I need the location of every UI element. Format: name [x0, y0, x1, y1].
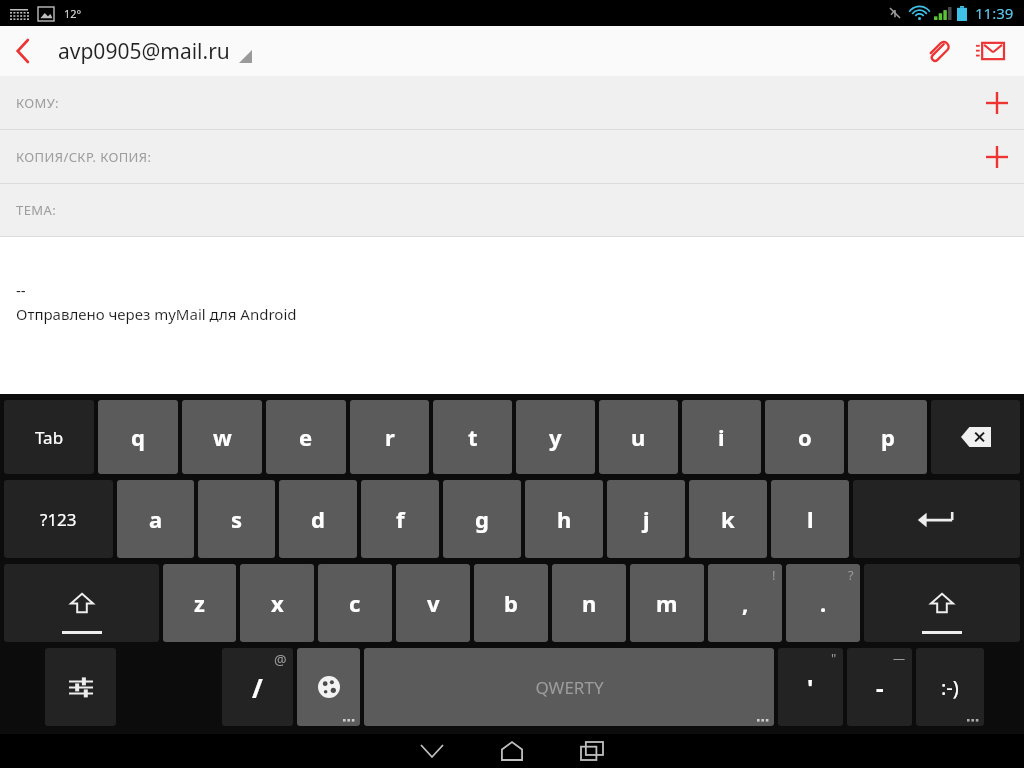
button[interactable]: Hide keyboard	[392, 734, 472, 768]
button[interactable]: r	[350, 400, 429, 474]
staticText: h	[557, 504, 572, 534]
button[interactable]: ТЕМА:	[0, 184, 1024, 236]
button[interactable]: /	[222, 648, 293, 726]
button[interactable]: f	[361, 480, 439, 558]
staticText: o	[798, 422, 812, 452]
staticText: !	[772, 566, 776, 584]
button[interactable]: --	[0, 237, 1024, 394]
button[interactable]: m	[630, 564, 704, 642]
button[interactable]: c	[318, 564, 392, 642]
button[interactable]: z	[163, 564, 236, 642]
staticText: e	[299, 422, 313, 452]
button[interactable]: .	[786, 564, 860, 642]
button[interactable]: КОМУ:	[0, 76, 1024, 129]
staticText: d	[311, 504, 325, 534]
staticText: n	[582, 588, 597, 618]
button[interactable]: j	[607, 480, 685, 558]
button[interactable]: w	[182, 400, 262, 474]
button[interactable]: g	[443, 480, 521, 558]
staticText: r	[385, 422, 395, 452]
staticText: q	[131, 422, 145, 452]
button[interactable]: n	[552, 564, 626, 642]
staticText: p	[881, 422, 895, 452]
button[interactable]: Add recipient	[970, 131, 1024, 183]
button[interactable]: avp0905@mail.ru	[58, 37, 252, 66]
button[interactable]: Change language	[297, 648, 360, 726]
button[interactable]: v	[396, 564, 470, 642]
staticText: .	[820, 588, 827, 618]
button[interactable]: -	[847, 648, 912, 726]
staticText: ?	[848, 566, 854, 584]
staticText: "	[831, 649, 837, 667]
staticText: avp0905@mail.ru	[58, 37, 230, 66]
button[interactable]: Recent apps	[552, 734, 632, 768]
staticText: —	[893, 650, 906, 666]
staticText: u	[631, 422, 646, 452]
button[interactable]: ,	[708, 564, 782, 642]
staticText: x	[271, 588, 284, 618]
button[interactable]: b	[474, 564, 548, 642]
staticText: --	[16, 280, 26, 300]
staticText: b	[504, 588, 518, 618]
button[interactable]: Send	[964, 26, 1016, 76]
button[interactable]: y	[516, 400, 595, 474]
staticText: КОМУ:	[16, 94, 59, 112]
button[interactable]: shift	[4, 564, 159, 642]
staticText: s	[231, 504, 243, 534]
button[interactable]: s	[198, 480, 275, 558]
button[interactable]: bksp	[931, 400, 1020, 474]
staticText: y	[549, 422, 562, 452]
button[interactable]: shift	[864, 564, 1020, 642]
button[interactable]: Attach	[912, 26, 964, 76]
staticText: c	[349, 588, 361, 618]
button[interactable]: p	[848, 400, 927, 474]
staticText: z	[194, 588, 205, 618]
staticText: w	[213, 422, 232, 452]
button[interactable]: QWERTY	[364, 648, 774, 726]
staticText: g	[475, 504, 489, 534]
button[interactable]: i	[682, 400, 761, 474]
button[interactable]: Back	[0, 26, 46, 76]
staticText: КОПИЯ/СКР. КОПИЯ:	[16, 148, 152, 166]
staticText: ?123	[40, 508, 77, 531]
button[interactable]: :-)	[916, 648, 984, 726]
button[interactable]: h	[525, 480, 603, 558]
staticText: Отправлено через myMail для Android	[16, 304, 297, 324]
staticText: j	[643, 504, 650, 534]
staticText: -	[876, 671, 884, 704]
button[interactable]: a	[117, 480, 194, 558]
button[interactable]: Keyboard settings	[45, 648, 116, 726]
staticText: 11:39	[975, 3, 1014, 23]
button[interactable]: КОПИЯ/СКР. КОПИЯ:	[0, 130, 1024, 183]
button[interactable]: Tab	[4, 400, 94, 474]
staticText: f	[396, 504, 405, 534]
button[interactable]: e	[266, 400, 346, 474]
button[interactable]: ?123	[4, 480, 113, 558]
staticText: k	[721, 504, 735, 534]
staticText: 12°	[64, 6, 82, 21]
staticText: @	[274, 650, 287, 669]
button[interactable]: k	[689, 480, 767, 558]
button[interactable]: d	[279, 480, 357, 558]
button[interactable]: '	[778, 648, 843, 726]
button[interactable]: t	[433, 400, 512, 474]
staticText: v	[427, 588, 440, 618]
button[interactable]: Home	[472, 734, 552, 768]
staticText: m	[656, 588, 678, 618]
button[interactable]: u	[599, 400, 678, 474]
button[interactable]: Add recipient	[970, 77, 1024, 129]
button[interactable]: q	[98, 400, 178, 474]
staticText: Tab	[35, 426, 64, 449]
staticText: ТЕМА:	[16, 201, 57, 219]
staticText: :-)	[941, 674, 959, 701]
button[interactable]: l	[771, 480, 849, 558]
button[interactable]: x	[240, 564, 314, 642]
staticText: a	[149, 504, 163, 534]
staticText: '	[807, 671, 814, 704]
staticText: l	[807, 504, 814, 534]
staticText: t	[468, 422, 478, 452]
staticText: QWERTY	[535, 676, 604, 699]
staticText: ,	[742, 588, 749, 618]
button[interactable]: enter	[853, 480, 1020, 558]
button[interactable]: o	[765, 400, 844, 474]
